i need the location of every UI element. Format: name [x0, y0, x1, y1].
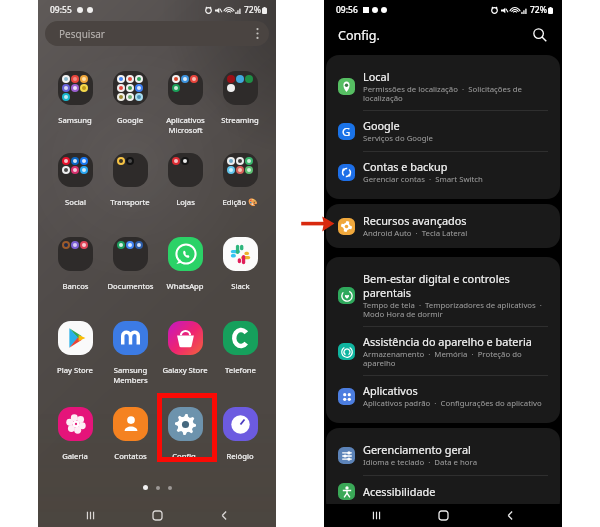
- button[interactable]: Início: [428, 504, 458, 527]
- staticText: Contas e backup: [363, 159, 448, 174]
- button[interactable]: Pesquisar: [45, 21, 269, 46]
- button[interactable]: Samsung: [47, 71, 103, 125]
- button[interactable]: Bancos: [47, 237, 103, 291]
- button[interactable]: Contatos: [102, 407, 158, 461]
- staticText: Aplicativos: [363, 383, 418, 398]
- staticText: Pesquisar: [59, 27, 105, 41]
- staticText: Galeria: [62, 451, 88, 461]
- staticText: 09:55: [50, 4, 72, 16]
- staticText: Bancos: [62, 281, 89, 291]
- button[interactable]: G: [326, 111, 560, 151]
- button[interactable]: Galeria: [47, 407, 103, 461]
- button[interactable]: Voltar: [209, 504, 239, 527]
- button[interactable]: Assistência do aparelho e bateria: [326, 327, 560, 375]
- button[interactable]: Samsung Members: [102, 321, 158, 385]
- staticText: Telefone: [225, 365, 256, 375]
- button[interactable]: Play Store: [47, 321, 103, 375]
- button[interactable]: Pesquisar: [528, 23, 552, 47]
- staticText: Galaxy Store: [162, 365, 208, 375]
- staticText: Aplicativos padrão · Configurações do ap…: [363, 398, 542, 409]
- staticText: Samsung: [58, 115, 92, 125]
- staticText: Google: [363, 118, 400, 133]
- button[interactable]: WhatsApp: [157, 237, 213, 291]
- staticText: Contatos: [114, 451, 147, 461]
- staticText: Transporte: [110, 197, 150, 207]
- staticText: G: [342, 124, 351, 140]
- staticText: Documentos: [107, 281, 154, 291]
- button[interactable]: Recursos avançados: [326, 206, 560, 246]
- staticText: Config.: [338, 27, 380, 44]
- button[interactable]: Lojas: [157, 153, 213, 207]
- button[interactable]: Telefone: [212, 321, 268, 375]
- staticText: Slack: [231, 281, 250, 291]
- staticText: Armazenamento · Memória · Proteção do ap…: [363, 349, 522, 368]
- button[interactable]: Aplicativos: [326, 376, 560, 416]
- button[interactable]: Recentes: [361, 504, 391, 527]
- staticText: Lojas: [176, 197, 195, 207]
- staticText: Edição 🎨: [222, 197, 258, 207]
- button[interactable]: Voltar: [495, 504, 525, 527]
- button[interactable]: Config.: [157, 407, 213, 461]
- button[interactable]: Local: [326, 62, 560, 110]
- staticText: Samsung Members: [113, 365, 148, 385]
- staticText: Gerenciar contas · Smart Switch: [363, 174, 483, 185]
- staticText: Local: [363, 69, 390, 84]
- staticText: Idioma e teclado · Data e hora: [363, 457, 478, 468]
- button[interactable]: Edição 🎨: [212, 153, 268, 207]
- staticText: Assistência do aparelho e bateria: [363, 334, 532, 349]
- staticText: Config.: [172, 451, 198, 461]
- button[interactable]: Transporte: [102, 153, 158, 207]
- button[interactable]: Slack: [212, 237, 268, 291]
- button[interactable]: Google: [102, 71, 158, 125]
- button[interactable]: Documentos: [102, 237, 158, 291]
- staticText: Relógio: [226, 451, 254, 461]
- staticText: 72%: [244, 4, 261, 16]
- staticText: Permissões de localização · Solicitações…: [363, 84, 522, 103]
- staticText: Recursos avançados: [363, 213, 467, 228]
- staticText: Serviços do Google: [363, 133, 433, 144]
- staticText: Acessibilidade: [363, 484, 436, 499]
- staticText: Social: [65, 197, 86, 207]
- button[interactable]: Bem-estar digital e controles parentais: [326, 264, 560, 326]
- staticText: Tempo de tela · Temporizadores de aplica…: [363, 300, 542, 319]
- staticText: Google: [117, 115, 143, 125]
- staticText: Streaming: [221, 115, 259, 125]
- button[interactable]: Início: [142, 504, 172, 527]
- button[interactable]: Relógio: [212, 407, 268, 461]
- button[interactable]: Recentes: [75, 504, 105, 527]
- staticText: Play Store: [57, 365, 93, 375]
- button[interactable]: Contas e backup: [326, 152, 560, 192]
- staticText: Bem-estar digital e controles parentais: [363, 271, 510, 300]
- button[interactable]: Aplicativos Microsoft: [157, 71, 213, 135]
- button[interactable]: Acessibilidade: [326, 476, 560, 507]
- button[interactable]: Galaxy Store: [157, 321, 213, 375]
- button[interactable]: Gerenciamento geral: [326, 435, 560, 475]
- staticText: 09:56: [336, 4, 358, 16]
- button[interactable]: Social: [47, 153, 103, 207]
- staticText: WhatsApp: [166, 281, 204, 291]
- button[interactable]: Streaming: [212, 71, 268, 125]
- staticText: 72%: [530, 4, 547, 16]
- staticText: Aplicativos Microsoft: [166, 115, 205, 135]
- staticText: Android Auto · Tecla Lateral: [363, 228, 468, 239]
- staticText: Gerenciamento geral: [363, 442, 471, 457]
